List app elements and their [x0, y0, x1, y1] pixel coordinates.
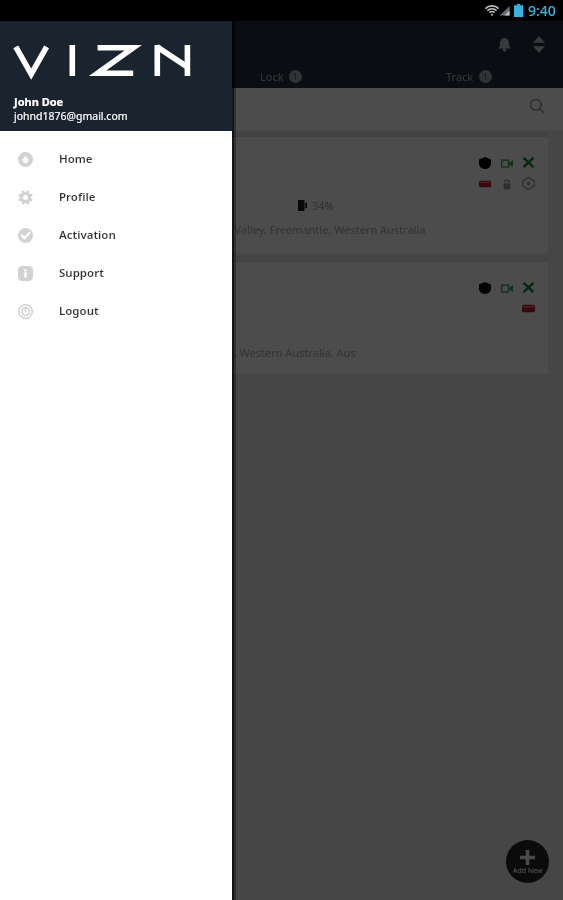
staticText: Logout — [59, 303, 99, 319]
button[interactable]: Lock — [187, 65, 375, 88]
staticText: 1 — [293, 71, 298, 82]
button[interactable]: Add New device — [506, 840, 549, 883]
staticText: johnd1876@gmail.com — [14, 109, 128, 123]
button[interactable]: Freemantle, Western Australia, Aus — [6, 262, 548, 374]
button[interactable]: Search — [524, 93, 550, 119]
button[interactable]: Sort — [522, 27, 556, 61]
staticText: John Doe — [14, 94, 64, 109]
button[interactable]: Logout — [0, 292, 232, 330]
staticText: Profile — [59, 189, 96, 205]
staticText: 5 mts Gum Valley, Freemantle, Western Au… — [175, 222, 426, 237]
button[interactable]: Notifications — [487, 27, 521, 61]
staticText: Lock — [260, 69, 284, 84]
staticText: 9:40 — [528, 1, 556, 20]
button[interactable]: Devices — [0, 65, 187, 88]
staticText: Freemantle, Western Australia, Aus — [175, 345, 356, 360]
button[interactable]: Activation — [0, 216, 232, 254]
button[interactable]: 34% — [6, 137, 548, 253]
staticText: Home — [59, 151, 93, 167]
button[interactable]: Track — [375, 65, 563, 88]
button[interactable]: Support — [0, 254, 232, 292]
staticText: 1 — [483, 71, 488, 82]
staticText: Activation — [59, 227, 116, 243]
staticText: Support — [59, 265, 104, 281]
button[interactable]: Home — [0, 140, 232, 178]
staticText: Search — [14, 100, 56, 118]
staticText: 34% — [312, 198, 334, 213]
staticText: Add New — [513, 866, 543, 876]
staticText: 1 — [114, 71, 119, 82]
staticText: Track — [446, 69, 474, 84]
button[interactable]: Profile — [0, 178, 232, 216]
staticText: Devices — [65, 69, 105, 84]
